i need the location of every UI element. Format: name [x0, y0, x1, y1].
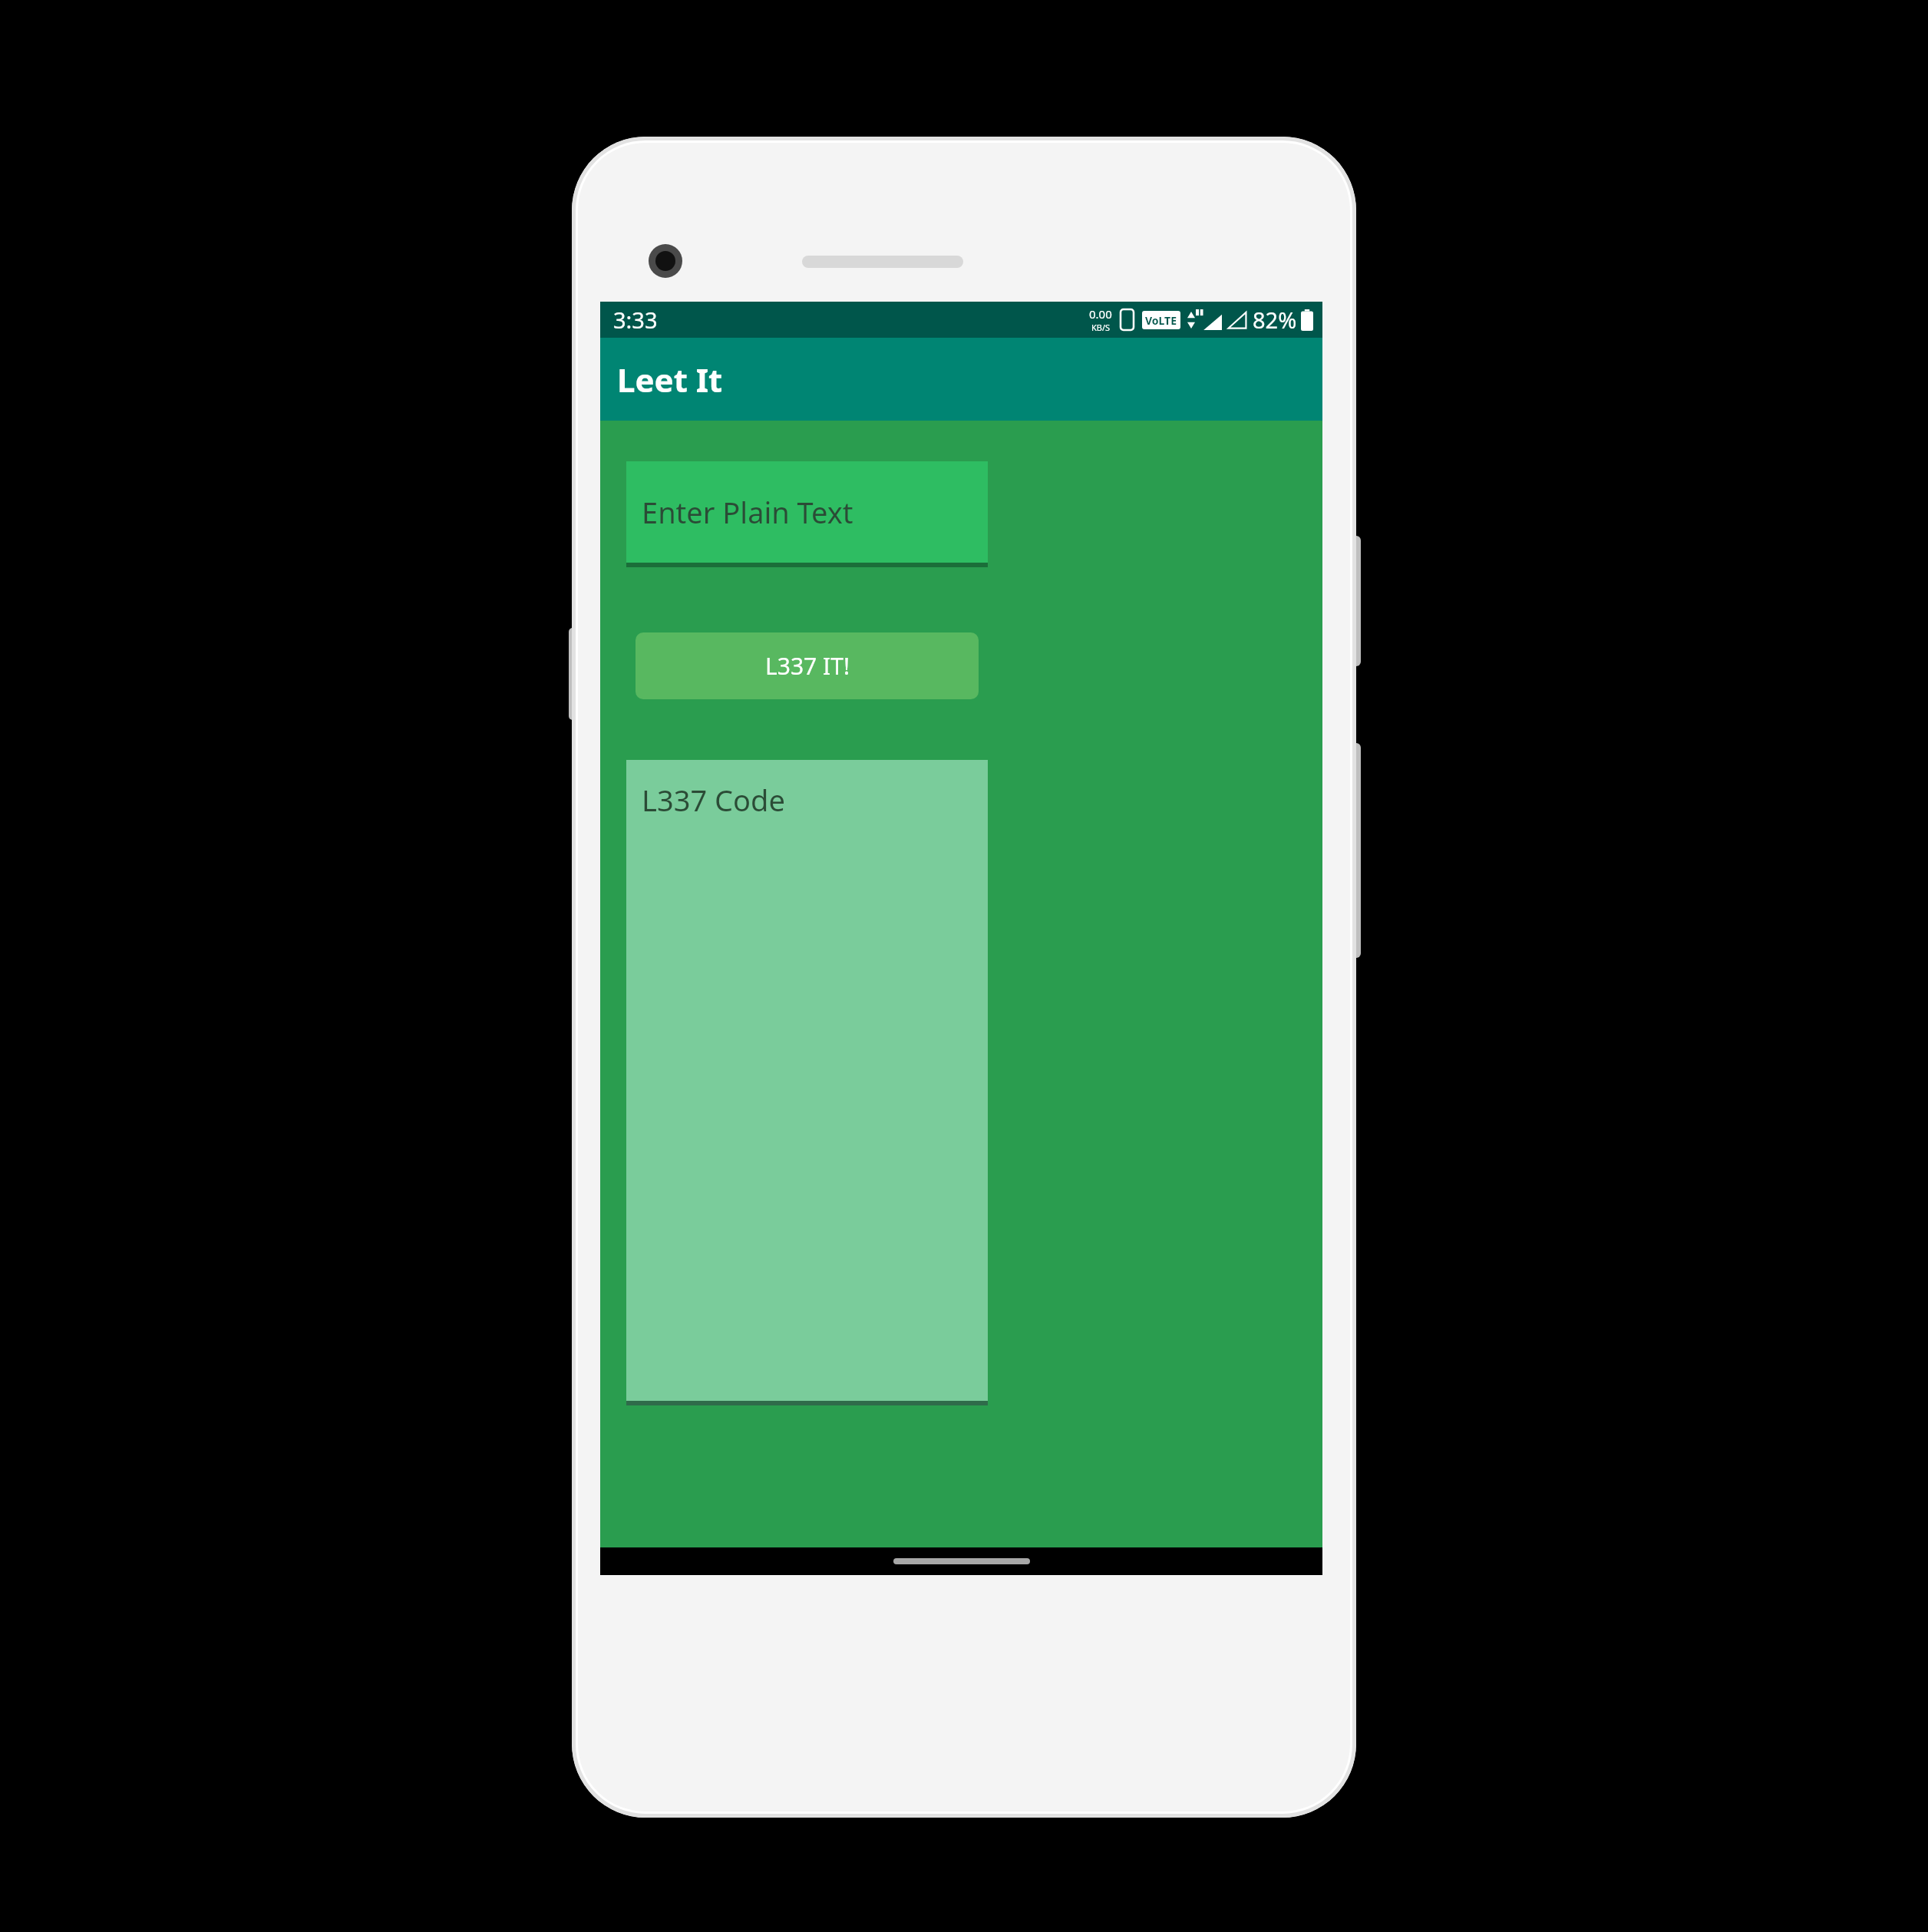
staticText: Leet It [617, 358, 723, 401]
staticText: 3:33 [613, 305, 658, 335]
button[interactable]: Enter Plain Text [626, 461, 988, 567]
button[interactable]: L337 Code [626, 760, 988, 1405]
staticText: 82% [1253, 305, 1297, 335]
button[interactable]: Home gesture bar [893, 1558, 1030, 1564]
staticText: VoLTE [1145, 313, 1177, 328]
staticText: 0.00 [1089, 306, 1112, 322]
staticText: KB/S [1091, 322, 1111, 333]
button[interactable]: L337 IT! [636, 632, 979, 699]
staticText: L337 IT! [765, 650, 850, 682]
staticText: L337 Code [642, 780, 785, 820]
staticText: Enter Plain Text [642, 492, 853, 532]
